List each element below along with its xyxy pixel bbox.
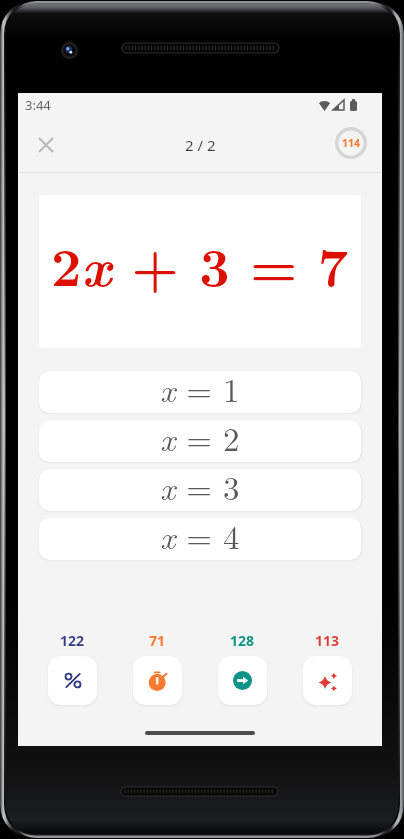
staticText: 122 [60,631,85,650]
staticText: 71 [149,631,166,650]
staticText: x = 3 [160,469,240,505]
button[interactable]: Next [218,656,267,705]
staticText: 113 [315,631,340,650]
staticText: 2x + 3 = 7 [51,225,349,302]
staticText: 3:44 [25,96,51,114]
staticText: 128 [230,631,255,650]
button[interactable]: x = 2 [39,420,361,462]
staticText: x = 4 [160,518,240,554]
button[interactable]: Close [27,126,65,164]
button[interactable]: Points 114 [335,127,367,159]
button[interactable]: Hint [303,656,352,705]
button[interactable]: Percent [48,656,97,705]
button[interactable]: x = 4 [39,518,361,560]
staticText: 114 [342,136,361,150]
staticText: 2 / 2 [185,135,216,155]
button[interactable]: x = 1 [39,371,361,413]
staticText: x = 2 [160,420,240,456]
button[interactable]: x = 3 [39,469,361,511]
staticText: x = 1 [160,371,240,407]
button[interactable]: Timer [133,656,182,705]
